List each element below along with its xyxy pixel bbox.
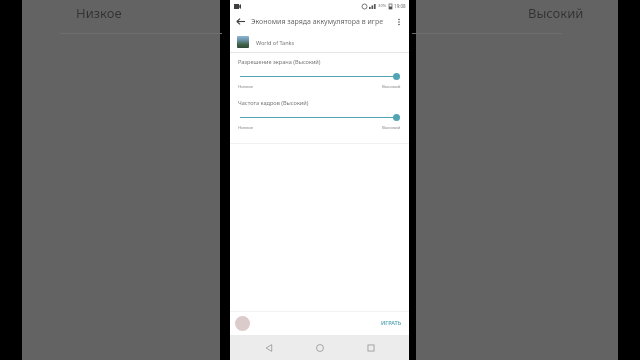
button[interactable]: More options xyxy=(388,11,409,32)
button[interactable]: Back xyxy=(256,335,281,360)
staticText: 19:08 xyxy=(394,3,406,9)
button[interactable]: Profile xyxy=(235,316,250,331)
staticText: Низкое xyxy=(238,83,254,89)
button[interactable]: World of Tanks xyxy=(230,32,409,52)
staticText: 30% xyxy=(378,3,387,9)
button[interactable]: Разрешение экрана (Высокий) xyxy=(230,58,409,89)
staticText: Высокий xyxy=(382,83,401,89)
staticText: Разрешение экрана (Высокий) xyxy=(238,58,321,66)
button[interactable]: Частота кадров (Высокий) xyxy=(230,99,409,130)
button[interactable]: Home xyxy=(307,335,332,360)
button[interactable]: Recents xyxy=(358,335,383,360)
staticText: World of Tanks xyxy=(256,39,295,46)
staticText: Низкое xyxy=(76,4,122,22)
button[interactable]: ИГРАТЬ xyxy=(379,317,404,329)
staticText: Частота кадров (Высокий) xyxy=(238,99,309,107)
staticText: Экономия заряда аккумулятора в игре xyxy=(251,17,388,27)
staticText: Высокий xyxy=(382,124,401,130)
staticText: Низкое xyxy=(238,124,254,130)
staticText: Высокий xyxy=(528,4,584,22)
staticText: ИГРАТЬ xyxy=(381,319,402,327)
button[interactable]: Back xyxy=(230,11,251,32)
